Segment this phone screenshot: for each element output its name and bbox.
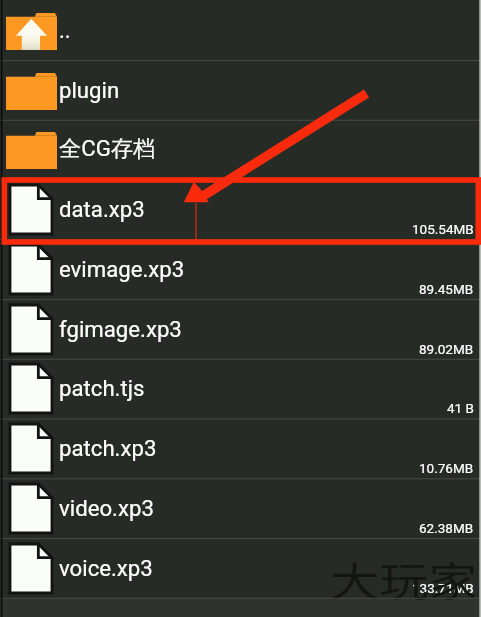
staticText: .. <box>59 17 71 43</box>
staticText: patch.xp3 <box>59 435 157 461</box>
staticText: 89.02MB <box>419 341 474 357</box>
staticText: 41 B <box>447 400 474 416</box>
button[interactable]: evimage.xp3 <box>0 240 481 300</box>
button[interactable]: data.xp3 <box>0 180 481 240</box>
button[interactable]: video.xp3 <box>0 479 481 539</box>
staticText: voice.xp3 <box>59 555 153 581</box>
button[interactable]: voice.xp3 <box>0 539 481 599</box>
staticText: data.xp3 <box>59 196 145 222</box>
staticText: 全CG存档 <box>59 135 156 163</box>
staticText: video.xp3 <box>59 495 154 521</box>
staticText: 62.38MB <box>419 520 474 536</box>
staticText: 89.45MB <box>419 281 474 297</box>
button[interactable]: .. <box>0 1 481 61</box>
button[interactable]: plugin <box>0 61 481 121</box>
staticText: 大玩家 <box>330 549 479 607</box>
staticText: 10.76MB <box>419 460 474 476</box>
button[interactable]: patch.xp3 <box>0 419 481 479</box>
button[interactable]: 全CG存档 <box>0 120 481 180</box>
staticText: 133.71MB <box>412 580 474 596</box>
staticText: 105.54MB <box>412 221 474 237</box>
staticText: fgimage.xp3 <box>59 316 182 342</box>
staticText: evimage.xp3 <box>59 256 185 282</box>
button[interactable]: patch.tjs <box>0 359 481 419</box>
button[interactable]: fgimage.xp3 <box>0 300 481 360</box>
staticText: patch.tjs <box>59 375 145 401</box>
staticText: plugin <box>59 77 120 103</box>
